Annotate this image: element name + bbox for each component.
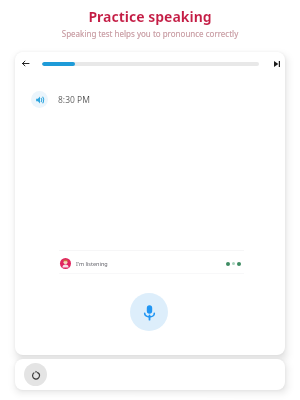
- staticText: Speaking test helps you to pronounce cor…: [0, 28, 300, 39]
- button[interactable]: Back: [15, 53, 36, 74]
- button[interactable]: I'm listening: [59, 252, 246, 275]
- staticText: Practice speaking: [0, 7, 300, 26]
- staticText: 8:30 PM: [58, 94, 90, 106]
- button[interactable]: Replay: [24, 363, 47, 386]
- button[interactable]: Play audio: [31, 91, 90, 108]
- button[interactable]: Play audio: [31, 91, 48, 108]
- button[interactable]: Skip to end: [266, 53, 285, 74]
- staticText: I'm listening: [76, 260, 108, 267]
- button[interactable]: Record: [130, 293, 168, 331]
